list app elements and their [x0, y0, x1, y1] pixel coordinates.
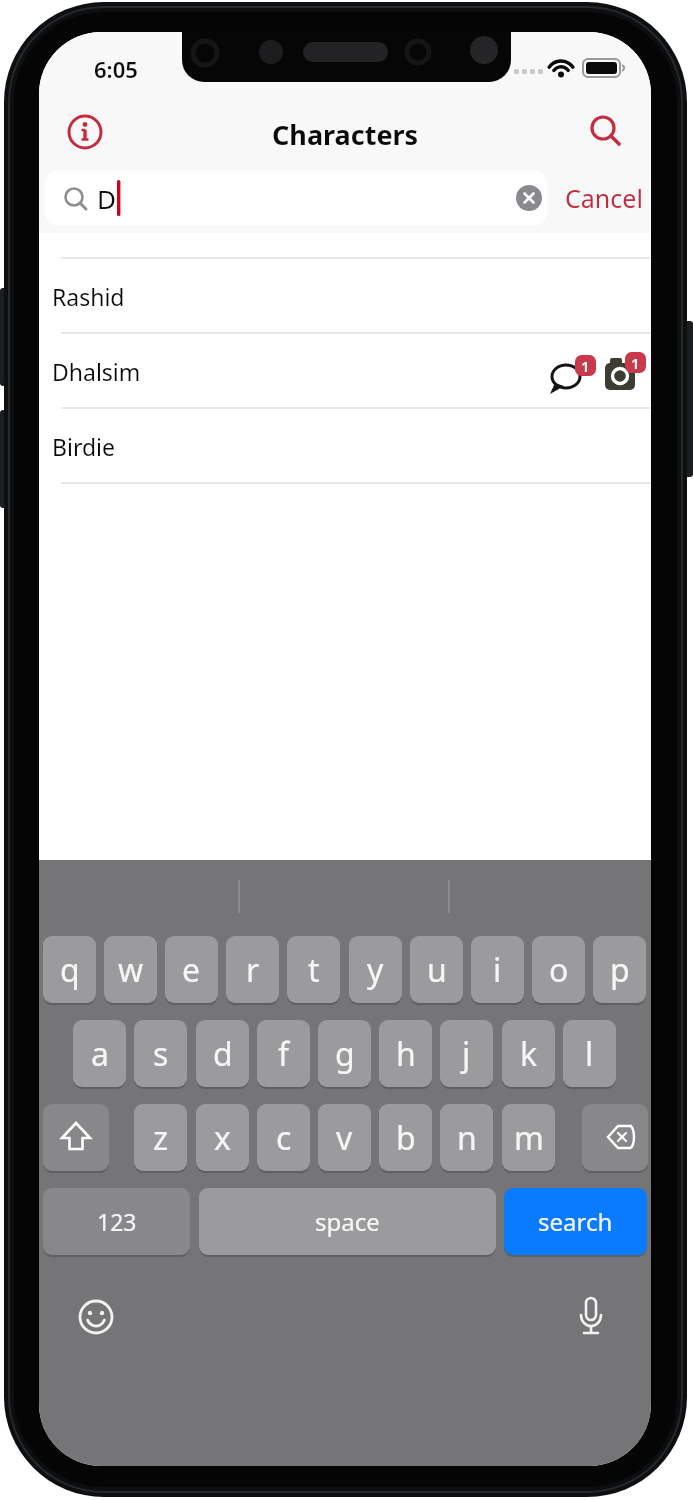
staticText: f	[278, 1032, 290, 1076]
staticText: e	[182, 948, 201, 992]
staticText: c	[276, 1116, 292, 1160]
staticText: Dhalsim	[52, 356, 141, 387]
button[interactable]: n	[440, 1104, 493, 1171]
button[interactable]: s	[134, 1020, 187, 1087]
staticText: search	[538, 1205, 613, 1238]
staticText: m	[514, 1116, 544, 1160]
staticText: d	[213, 1032, 233, 1076]
button[interactable]: D	[45, 170, 547, 226]
button[interactable]	[564, 1290, 618, 1344]
button[interactable]: a	[73, 1020, 126, 1087]
button[interactable]	[557, 170, 651, 226]
staticText: q	[60, 948, 80, 992]
staticText: w	[118, 948, 144, 992]
button[interactable]: Dhalsim	[39, 334, 651, 408]
staticText: z	[153, 1116, 169, 1160]
staticText: j	[462, 1032, 471, 1076]
staticText: n	[457, 1116, 477, 1160]
staticText: o	[549, 948, 569, 992]
button[interactable]: search	[504, 1188, 647, 1255]
staticText: t	[308, 948, 320, 992]
staticText: Birdie	[52, 431, 115, 462]
staticText: r	[246, 948, 260, 992]
button[interactable]: i	[471, 936, 524, 1003]
button[interactable]: l	[563, 1020, 616, 1087]
staticText: a	[91, 1032, 109, 1076]
staticText: Characters	[272, 116, 419, 150]
button[interactable]: v	[318, 1104, 371, 1171]
button[interactable]: h	[379, 1020, 432, 1087]
staticText: Cancel	[565, 181, 643, 215]
button[interactable]: o	[532, 936, 585, 1003]
staticText: v	[336, 1116, 353, 1160]
button[interactable]: p	[593, 936, 646, 1003]
staticText: h	[396, 1032, 416, 1076]
staticText: space	[315, 1205, 380, 1238]
button[interactable]	[69, 1290, 123, 1344]
staticText: 1	[631, 353, 640, 373]
staticText: x	[214, 1116, 231, 1160]
staticText: Rashid	[52, 281, 125, 312]
button[interactable]: j	[440, 1020, 493, 1087]
button[interactable]: e	[165, 936, 218, 1003]
staticText: 6:05	[94, 54, 138, 78]
button[interactable]: z	[134, 1104, 187, 1171]
staticText: b	[396, 1116, 416, 1160]
button[interactable]: Rashid	[39, 259, 651, 333]
button[interactable]	[43, 1104, 109, 1171]
staticText: i	[493, 948, 502, 992]
button[interactable]	[585, 110, 629, 154]
button[interactable]: b	[379, 1104, 432, 1171]
staticText: p	[610, 948, 630, 992]
button[interactable]: m	[502, 1104, 555, 1171]
staticText: 123	[97, 1206, 137, 1237]
button[interactable]: x	[196, 1104, 249, 1171]
staticText: y	[367, 948, 384, 992]
button[interactable]: r	[226, 936, 279, 1003]
staticText: s	[153, 1032, 169, 1076]
button[interactable]: y	[349, 936, 402, 1003]
staticText: k	[520, 1032, 538, 1076]
button[interactable]: d	[196, 1020, 249, 1087]
button[interactable]: g	[318, 1020, 371, 1087]
staticText: 1	[581, 356, 590, 376]
button[interactable]: w	[104, 936, 157, 1003]
button[interactable]: Birdie	[39, 409, 651, 483]
button[interactable]: q	[43, 936, 96, 1003]
staticText: D	[97, 181, 116, 216]
staticText: u	[427, 948, 447, 992]
staticText: l	[585, 1032, 594, 1076]
button[interactable]	[65, 112, 105, 152]
button[interactable]: k	[502, 1020, 555, 1087]
button[interactable]: t	[287, 936, 340, 1003]
staticText: g	[335, 1032, 355, 1076]
button[interactable]: u	[410, 936, 463, 1003]
button[interactable]: c	[257, 1104, 310, 1171]
button[interactable]	[582, 1104, 648, 1171]
button[interactable]: 123	[43, 1188, 190, 1255]
button[interactable]: space	[199, 1188, 496, 1255]
button[interactable]: f	[257, 1020, 310, 1087]
